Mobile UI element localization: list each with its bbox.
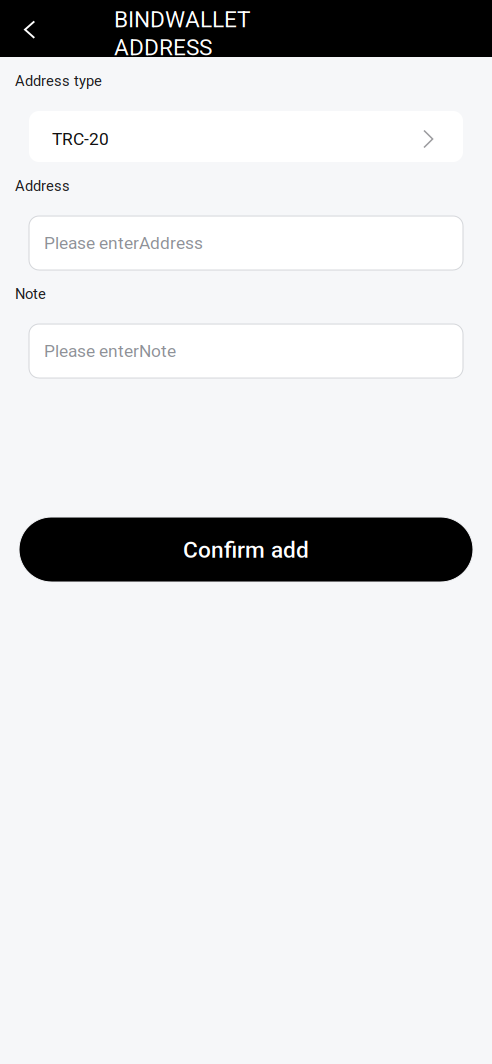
staticText: TRC-20 — [52, 129, 109, 149]
button[interactable]: Back — [7, 5, 53, 51]
button[interactable]: TRC-20 — [0, 111, 492, 162]
staticText: ADDRESS — [114, 34, 212, 61]
button[interactable]: Please enterNote — [0, 324, 492, 378]
staticText: Address — [15, 177, 70, 195]
button[interactable]: Please enterAddress — [0, 216, 492, 270]
staticText: BINDWALLET — [114, 6, 251, 33]
button[interactable]: Confirm add — [0, 517, 492, 582]
staticText: Note — [15, 285, 46, 303]
staticText: Confirm add — [183, 537, 309, 563]
staticText: Please enterNote — [44, 341, 176, 361]
staticText: Please enterAddress — [44, 233, 203, 253]
staticText: Address type — [15, 72, 102, 90]
